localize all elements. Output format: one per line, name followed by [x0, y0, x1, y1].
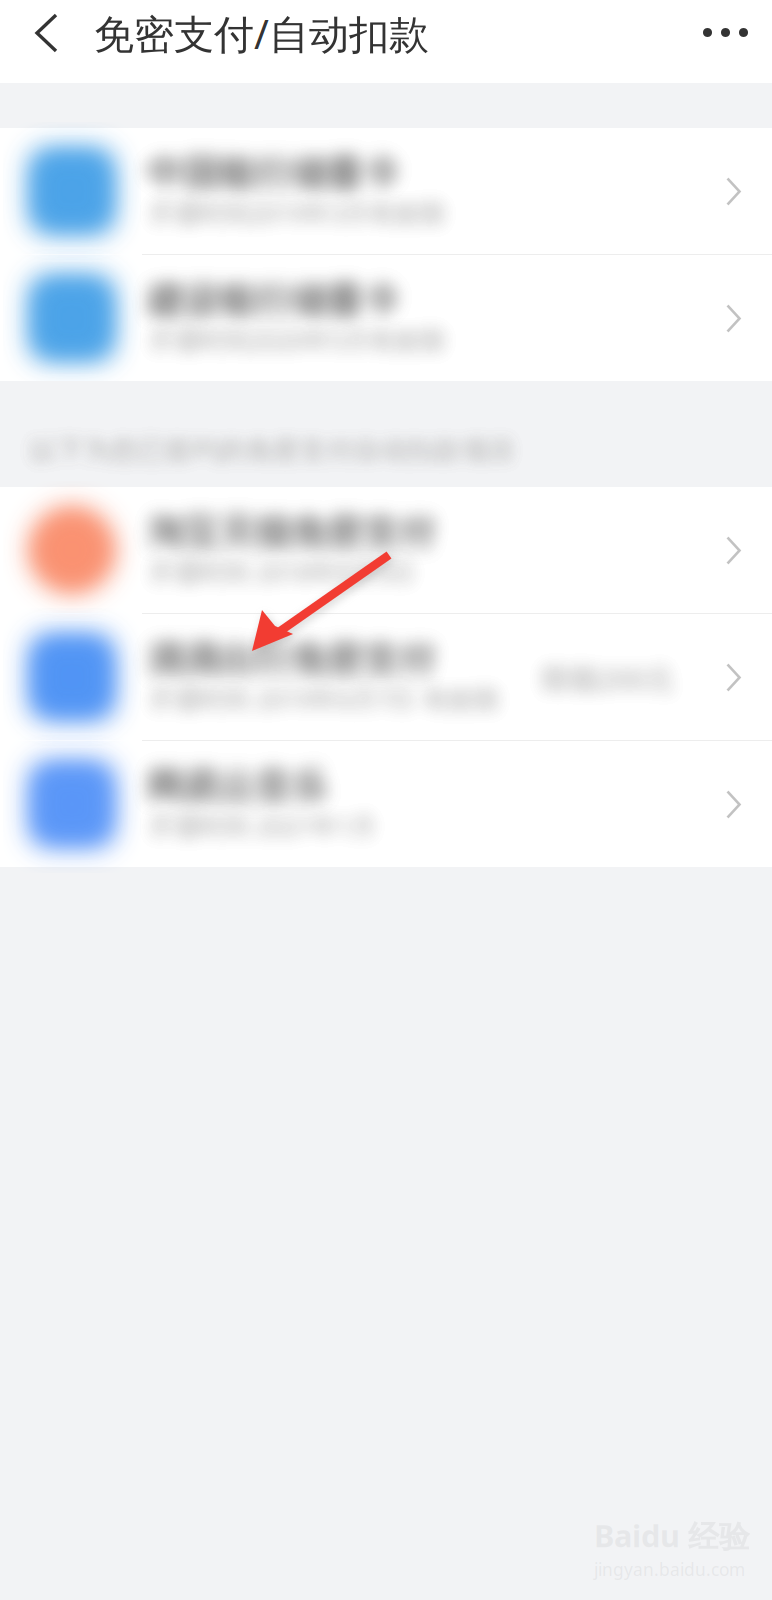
button[interactable]: 建设银行储蓄卡	[0, 255, 772, 381]
staticText: jingyan.baidu.com	[594, 1558, 745, 1581]
staticText: 免密支付/自动扣款	[94, 7, 429, 60]
button[interactable]: 中国银行储蓄卡	[0, 128, 772, 254]
staticText: Baidu 经验	[594, 1515, 750, 1556]
button[interactable]: 淘宝天猫免密支付	[0, 487, 772, 613]
button[interactable]: More options	[685, 10, 766, 55]
button[interactable]: Back	[0, 0, 80, 66]
button[interactable]: 网易云音乐	[0, 741, 772, 867]
button[interactable]: 滴滴出行免密支付	[0, 614, 772, 740]
